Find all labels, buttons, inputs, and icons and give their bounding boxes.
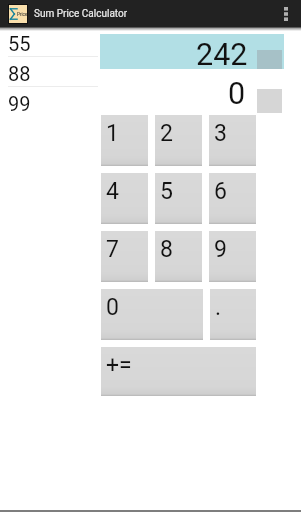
- staticText: 1: [106, 120, 119, 147]
- button[interactable]: 3: [209, 115, 256, 166]
- staticText: 242: [196, 37, 248, 72]
- staticText: 0: [106, 294, 119, 321]
- button[interactable]: 99: [0, 87, 100, 117]
- staticText: Price: [17, 12, 28, 17]
- button[interactable]: +=: [101, 347, 256, 396]
- staticText: 4: [106, 178, 119, 205]
- button[interactable]: 1: [101, 115, 148, 166]
- button[interactable]: 6: [209, 173, 256, 224]
- staticText: 7: [106, 236, 119, 263]
- button[interactable]: More options: [271, 0, 301, 27]
- staticText: 88: [8, 62, 31, 85]
- staticText: 0: [228, 76, 246, 112]
- staticText: 5: [160, 178, 173, 205]
- staticText: Sum Price Calculator: [34, 8, 128, 20]
- button[interactable]: 5: [155, 173, 202, 224]
- staticText: 3: [214, 120, 227, 147]
- staticText: 55: [8, 32, 31, 55]
- button[interactable]: 8: [155, 231, 202, 282]
- button[interactable]: 4: [101, 173, 148, 224]
- staticText: 2: [160, 120, 173, 147]
- staticText: 99: [8, 92, 31, 115]
- button[interactable]: 88: [0, 57, 100, 87]
- staticText: 9: [214, 236, 227, 263]
- button[interactable]: 2: [155, 115, 202, 166]
- staticText: 6: [214, 178, 227, 205]
- button[interactable]: 0: [101, 289, 203, 340]
- button[interactable]: .: [210, 289, 256, 340]
- staticText: .: [215, 294, 222, 321]
- button[interactable]: 9: [209, 231, 256, 282]
- button[interactable]: 7: [101, 231, 148, 282]
- staticText: +=: [106, 352, 132, 379]
- button[interactable]: 55: [0, 27, 100, 57]
- staticText: 8: [160, 236, 173, 263]
